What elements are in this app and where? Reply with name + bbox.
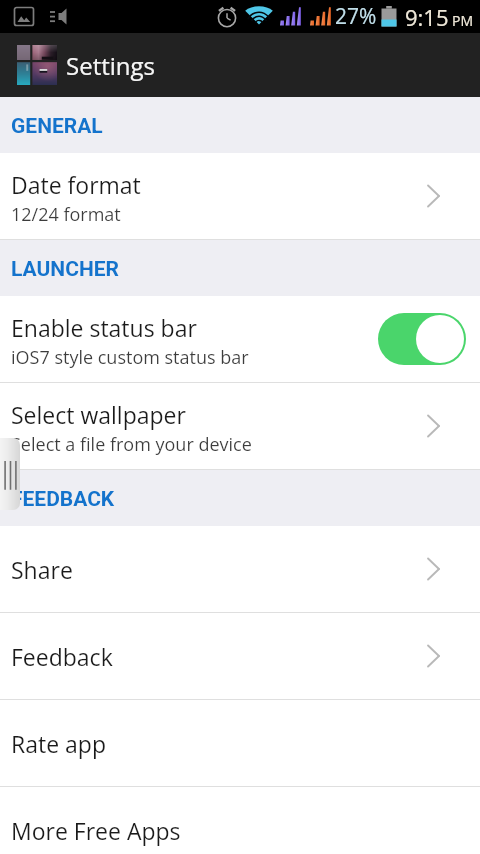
staticText: Feedback [11,641,427,672]
staticText: LAUNCHER [11,257,119,282]
button[interactable]: Enable status bar toggle [378,313,466,365]
staticText: 27% [335,2,377,31]
staticText: Settings [66,49,155,82]
button[interactable]: Feedback [0,613,480,700]
staticText: PM [452,11,474,30]
staticText: More Free Apps [11,815,440,846]
staticText: iOS7 style custom status bar [11,345,249,370]
button[interactable]: Open navigation drawer [0,438,20,510]
button[interactable]: More Free Apps [0,787,480,854]
staticText: Date format [11,169,141,200]
staticText: FEEDBACK [11,487,115,512]
button[interactable]: Share [0,526,480,613]
staticText: Share [11,554,427,585]
staticText: 9:15 [405,2,449,32]
staticText: Rate app [11,728,440,759]
button[interactable]: Select wallpaper [0,383,480,470]
button[interactable]: Date format [0,153,480,240]
staticText: 12/24 format [11,202,121,227]
staticText: Enable status bar [11,312,197,343]
other: Alarm set [216,5,238,28]
staticText: GENERAL [11,114,103,139]
staticText: Select wallpaper [11,399,186,430]
staticText: Select a file from your device [11,432,252,457]
button[interactable]: Enable status bar [0,296,480,383]
button[interactable]: Rate app [0,700,480,787]
